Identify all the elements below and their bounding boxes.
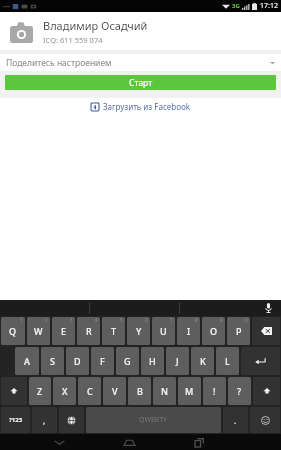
button[interactable]: ?123 — [1, 407, 30, 433]
button[interactable]: . — [223, 407, 248, 433]
staticText: E — [61, 325, 67, 337]
button[interactable]: V — [103, 377, 126, 405]
button[interactable]: Shift — [1, 377, 27, 405]
button[interactable]: Voice input — [255, 300, 281, 316]
staticText: H — [149, 355, 156, 367]
button[interactable]: Backspace — [252, 317, 280, 345]
staticText: V — [112, 385, 118, 397]
staticText: 4 — [95, 317, 98, 323]
staticText: F — [100, 355, 105, 367]
staticText: 5 — [120, 317, 123, 323]
button[interactable]: H — [141, 347, 164, 375]
button[interactable]: G — [116, 347, 139, 375]
staticText: ? — [237, 385, 242, 397]
button[interactable]: Emoji — [250, 407, 280, 433]
button[interactable]: Enter — [241, 347, 280, 375]
button[interactable]: Recent apps — [182, 434, 216, 450]
button[interactable]: Change input language — [59, 407, 84, 433]
staticText: 7 — [170, 317, 173, 323]
staticText: Q — [9, 325, 17, 337]
button[interactable]: B — [128, 377, 151, 405]
staticText: Загрузить из Facebook — [103, 101, 191, 112]
button[interactable]: W — [27, 317, 50, 345]
button[interactable]: X — [53, 377, 76, 405]
button[interactable]: Загрузить из Facebook — [87, 98, 195, 115]
staticText: ICQ: 611 559 074 — [43, 35, 103, 45]
button[interactable]: A — [15, 347, 39, 375]
staticText: Старт — [129, 77, 153, 89]
button[interactable]: P — [227, 317, 250, 345]
staticText: S — [50, 355, 55, 367]
button[interactable]: S — [41, 347, 64, 375]
staticText: Z — [37, 385, 43, 397]
button[interactable]: Y — [127, 317, 150, 345]
staticText: Поделитесь настроением — [6, 57, 112, 69]
staticText: C — [87, 385, 93, 397]
staticText: N — [161, 385, 168, 397]
staticText: M — [185, 385, 194, 397]
staticText: 2 — [45, 317, 48, 323]
button[interactable]: I — [177, 317, 200, 345]
button[interactable]: F — [91, 347, 114, 375]
staticText: T — [111, 325, 117, 337]
button[interactable]: Change profile photo — [6, 16, 36, 46]
staticText: P — [236, 325, 242, 337]
staticText: 9 — [220, 317, 223, 323]
staticText: A — [24, 355, 30, 367]
button[interactable]: Shift — [253, 377, 280, 405]
staticText: . — [234, 415, 237, 426]
button[interactable]: Space — [86, 407, 221, 433]
staticText: L — [225, 355, 230, 367]
staticText: ?123 — [9, 416, 23, 424]
staticText: G — [124, 355, 131, 367]
button[interactable]: Hide keyboard — [42, 434, 76, 450]
button[interactable]: , — [32, 407, 57, 433]
button[interactable]: U — [152, 317, 175, 345]
button[interactable]: N — [153, 377, 176, 405]
staticText: I — [187, 325, 191, 337]
staticText: O — [210, 325, 218, 337]
staticText: D — [74, 355, 81, 367]
button[interactable]: Change profile photo — [0, 12, 281, 50]
staticText: J — [176, 355, 179, 367]
button[interactable]: Старт — [5, 75, 276, 90]
button[interactable]: ! — [203, 377, 226, 405]
staticText: W — [34, 325, 43, 337]
button[interactable]: ? — [228, 377, 251, 405]
staticText: K — [200, 355, 206, 367]
staticText: QWERTY — [139, 415, 168, 425]
staticText: ! — [213, 385, 216, 397]
staticText: R — [86, 325, 92, 337]
staticText: X — [62, 385, 68, 397]
button[interactable]: M — [178, 377, 201, 405]
button[interactable]: R — [77, 317, 100, 345]
staticText: 0 — [245, 317, 248, 323]
staticText: , — [43, 415, 46, 426]
button[interactable]: Home — [112, 434, 146, 450]
button[interactable]: Z — [29, 377, 51, 405]
button[interactable]: K — [191, 347, 214, 375]
button[interactable]: T — [102, 317, 125, 345]
button[interactable]: L — [216, 347, 239, 375]
staticText: U — [160, 325, 167, 337]
staticText: 1 — [20, 317, 23, 323]
button[interactable]: J — [166, 347, 189, 375]
staticText: B — [137, 385, 143, 397]
staticText: 17:12 — [260, 1, 278, 11]
button[interactable]: Поделитесь настроением — [0, 54, 281, 71]
button[interactable]: O — [202, 317, 225, 345]
staticText: Y — [136, 325, 142, 337]
button[interactable]: E — [52, 317, 75, 345]
staticText: 3G — [232, 2, 240, 10]
staticText: Владимир Осадчий — [43, 18, 148, 33]
button[interactable]: C — [78, 377, 101, 405]
staticText: 8 — [195, 317, 198, 323]
staticText: 3 — [70, 317, 73, 323]
button[interactable]: Q — [1, 317, 25, 345]
button[interactable]: D — [66, 347, 89, 375]
staticText: 6 — [145, 317, 148, 323]
